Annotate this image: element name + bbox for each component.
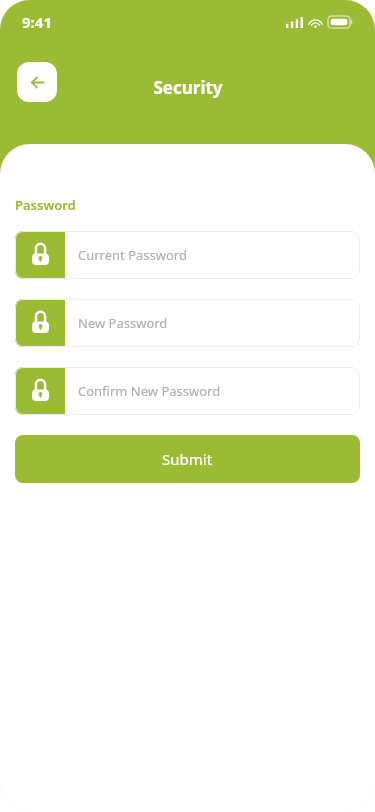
staticText: Current Password bbox=[78, 246, 187, 264]
staticText: Submit bbox=[162, 449, 213, 469]
staticText: 9:41 bbox=[22, 12, 52, 32]
button[interactable]: Current Password bbox=[15, 231, 360, 279]
button[interactable]: Confirm New Password bbox=[15, 367, 360, 415]
staticText: New Password bbox=[78, 314, 168, 332]
staticText: Confirm New Password bbox=[78, 382, 221, 400]
button[interactable]: Back bbox=[17, 62, 57, 102]
button[interactable]: New Password bbox=[15, 299, 360, 347]
staticText: Security bbox=[153, 76, 223, 99]
button[interactable]: Submit bbox=[15, 435, 360, 483]
staticText: Password bbox=[15, 196, 76, 214]
